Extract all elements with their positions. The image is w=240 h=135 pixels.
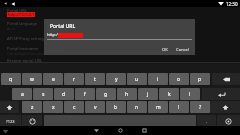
staticText: x <box>52 104 55 111</box>
staticText: s <box>42 91 45 98</box>
button[interactable]: Recents <box>139 126 149 135</box>
button[interactable]: Emoji <box>22 115 42 127</box>
button[interactable]: m <box>148 101 168 113</box>
button[interactable]: Home <box>115 126 125 135</box>
button[interactable]: Shift <box>0 101 19 113</box>
staticText: . <box>206 119 208 124</box>
button[interactable]: AP/SP Proxy settings <box>0 36 240 47</box>
button[interactable]: l <box>180 88 200 100</box>
button[interactable]: j <box>138 88 158 100</box>
button[interactable]: Symbols <box>0 115 21 127</box>
staticText: q <box>9 76 13 83</box>
staticText: Portal URL <box>50 23 76 30</box>
staticText: d <box>62 91 66 98</box>
staticText: w <box>30 76 34 83</box>
button[interactable]: w <box>22 73 42 85</box>
staticText: Portal hostname <box>7 46 39 51</box>
button[interactable]: x <box>43 101 63 113</box>
staticText: g <box>104 91 108 98</box>
button[interactable]: v <box>85 101 105 113</box>
staticText: i <box>157 76 159 83</box>
staticText: ! <box>178 104 180 111</box>
staticText: c <box>73 104 76 111</box>
staticText: Cancel <box>176 47 190 53</box>
staticText: Use default hostname setting <box>7 51 57 56</box>
button[interactable]: Period <box>197 115 216 127</box>
button[interactable]: n <box>127 101 147 113</box>
staticText: l <box>189 91 191 98</box>
button[interactable]: p <box>190 73 210 85</box>
button[interactable]: h <box>117 88 137 100</box>
staticText: Auto <box>7 26 15 31</box>
button[interactable]: Portal hostname <box>0 46 240 57</box>
button[interactable]: s <box>33 88 53 100</box>
staticText: b <box>114 104 118 111</box>
button[interactable]: Back <box>91 126 101 135</box>
staticText: r <box>73 76 76 83</box>
staticText: o <box>177 76 181 83</box>
button[interactable]: Enter <box>202 88 240 100</box>
staticText: Portal URL <box>7 8 27 13</box>
staticText: AP/SP Proxy settings <box>7 36 46 41</box>
button[interactable]: i <box>148 73 168 85</box>
button[interactable]: y <box>106 73 126 85</box>
staticText: n <box>135 104 139 111</box>
staticText: ?123 <box>6 119 15 124</box>
button[interactable]: u <box>127 73 147 85</box>
button[interactable]: q <box>1 73 21 85</box>
button[interactable]: f <box>75 88 95 100</box>
button[interactable]: Restore portal URL <box>0 58 240 69</box>
button[interactable]: k <box>159 88 179 100</box>
button[interactable]: a <box>12 88 32 100</box>
staticText: http://10.0.0.1 <box>8 12 35 17</box>
button[interactable]: o <box>169 73 189 85</box>
other: Hide keyboard <box>2 128 9 135</box>
button[interactable]: ! <box>169 101 189 113</box>
button[interactable]: c <box>64 101 84 113</box>
button[interactable]: ? <box>190 101 210 113</box>
button[interactable]: Shift <box>210 101 240 113</box>
staticText: v <box>94 104 97 111</box>
button[interactable]: Backspace <box>212 73 240 85</box>
button[interactable]: OK <box>160 46 170 54</box>
staticText: t <box>94 76 96 83</box>
button[interactable]: Portal URL <box>0 8 240 18</box>
staticText: m <box>156 104 161 111</box>
staticText: f <box>84 91 86 98</box>
staticText: e <box>52 76 55 83</box>
staticText: p <box>198 76 202 83</box>
staticText: h <box>125 91 129 98</box>
button[interactable]: b <box>106 101 126 113</box>
staticText: ? <box>199 104 202 111</box>
staticText: a <box>21 91 24 98</box>
staticText: Restore portal URL <box>7 58 43 63</box>
staticText: Portal language <box>7 21 37 26</box>
button[interactable]: Cancel <box>174 46 192 54</box>
button[interactable]: Voice input <box>217 115 240 127</box>
staticText: y <box>115 76 118 83</box>
staticText: u <box>135 76 139 83</box>
button[interactable]: Space <box>44 115 196 127</box>
staticText: j <box>147 91 149 98</box>
button[interactable]: e <box>43 73 63 85</box>
staticText: k <box>168 91 171 98</box>
staticText: z <box>31 104 34 111</box>
button[interactable]: d <box>54 88 74 100</box>
staticText: http:/ <box>47 32 58 38</box>
button[interactable]: z <box>22 101 42 113</box>
staticText: 12:30 <box>226 1 238 7</box>
button[interactable]: t <box>85 73 105 85</box>
button[interactable]: g <box>96 88 116 100</box>
button[interactable]: r <box>64 73 84 85</box>
staticText: OK <box>162 47 168 53</box>
button[interactable]: Portal language <box>0 21 240 32</box>
